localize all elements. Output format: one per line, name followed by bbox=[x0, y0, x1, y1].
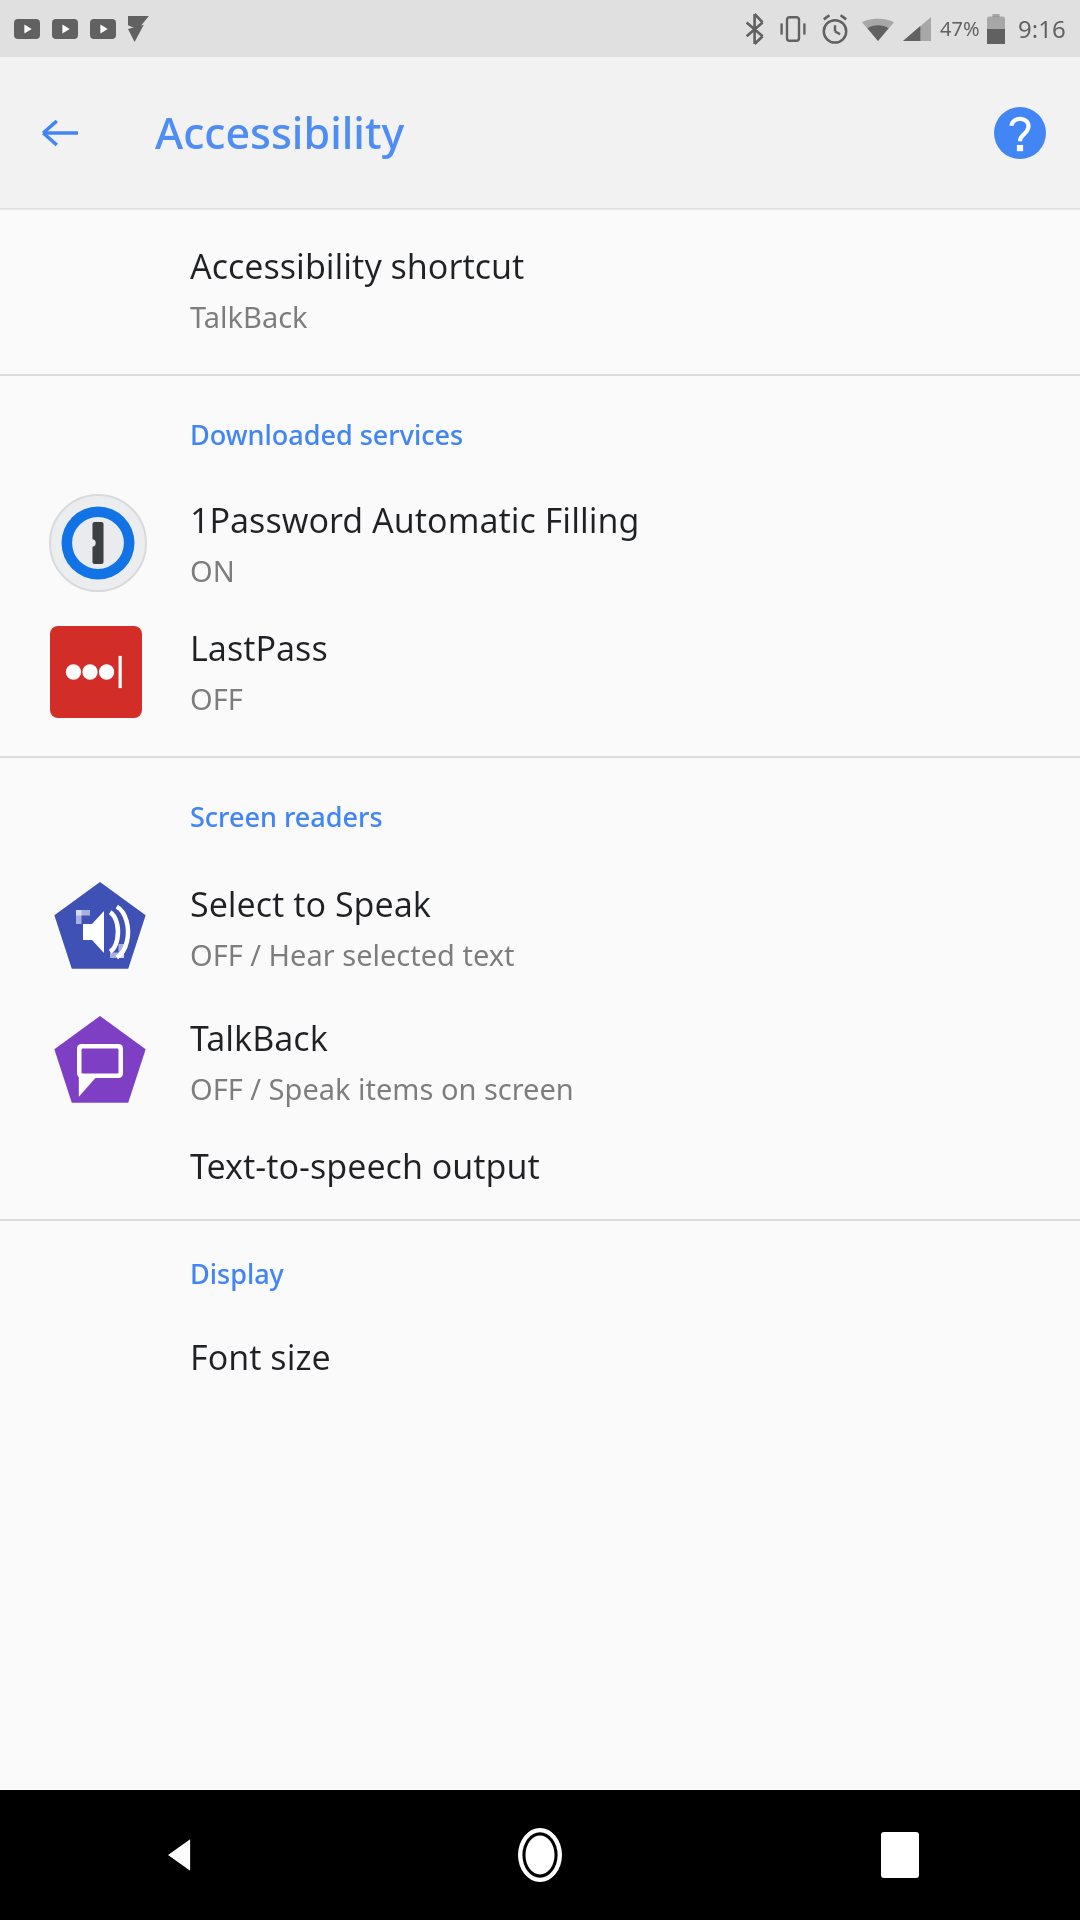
button[interactable]: Back bbox=[28, 101, 92, 165]
button[interactable]: 1Password Automatic Filling bbox=[0, 487, 1080, 599]
button[interactable]: LastPass bbox=[0, 617, 1080, 726]
staticText: ON bbox=[190, 551, 235, 590]
button[interactable]: Text-to-speech output bbox=[0, 1135, 1080, 1197]
staticText: Text-to-speech output bbox=[190, 1143, 540, 1189]
staticText: TalkBack bbox=[190, 1015, 328, 1061]
staticText: Accessibility shortcut bbox=[190, 243, 525, 289]
button[interactable]: Accessibility shortcut bbox=[0, 235, 1080, 344]
button[interactable]: TalkBack bbox=[0, 1003, 1080, 1119]
button[interactable]: Font size bbox=[0, 1326, 1080, 1388]
button[interactable]: Help bbox=[988, 101, 1052, 165]
staticText: 47% bbox=[940, 15, 980, 42]
staticText: TalkBack bbox=[190, 297, 308, 336]
button[interactable]: Recent apps bbox=[720, 1790, 1080, 1920]
staticText: Display bbox=[190, 1255, 284, 1292]
staticText: Select to Speak bbox=[190, 881, 431, 927]
staticText: OFF / Speak items on screen bbox=[190, 1069, 574, 1108]
staticText: Font size bbox=[190, 1334, 331, 1380]
button[interactable]: Select to Speak bbox=[0, 869, 1080, 985]
staticText: OFF bbox=[190, 679, 243, 718]
staticText: 1Password Automatic Filling bbox=[190, 497, 640, 543]
staticText: Downloaded services bbox=[190, 416, 464, 453]
button[interactable]: Home bbox=[360, 1790, 720, 1920]
staticText: Screen readers bbox=[190, 798, 383, 835]
staticText: Accessibility bbox=[155, 103, 405, 162]
staticText: OFF / Hear selected text bbox=[190, 935, 515, 974]
staticText: 9:16 bbox=[1018, 12, 1066, 45]
staticText: LastPass bbox=[190, 625, 328, 671]
button[interactable]: Back bbox=[0, 1790, 360, 1920]
